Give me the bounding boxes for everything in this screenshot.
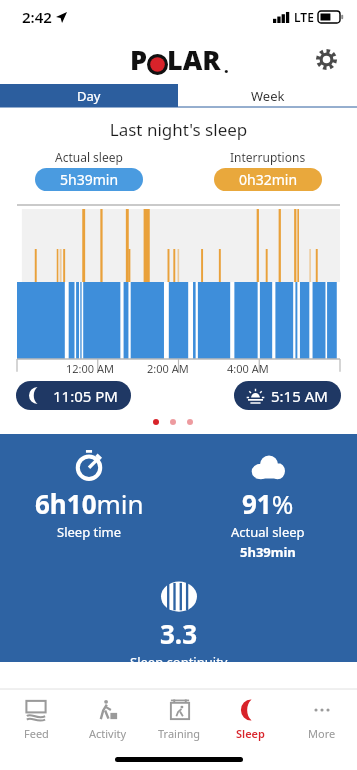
button[interactable]: Day [0, 84, 178, 107]
staticText: Actual sleep [231, 523, 305, 541]
staticText: 12:00 AM [66, 361, 114, 376]
button[interactable]: Week [178, 84, 357, 107]
staticText: Activity [89, 726, 127, 741]
staticText: 6h10min [35, 486, 144, 521]
staticText: Last night's sleep [0, 118, 357, 141]
staticText: . [224, 56, 229, 78]
staticText: 4:00 AM [227, 361, 269, 376]
button[interactable]: Feed [0, 690, 72, 748]
staticText: LTE [294, 9, 314, 25]
staticText: P [130, 41, 148, 78]
staticText: Sleep time [57, 523, 122, 541]
button[interactable]: Settings [309, 42, 343, 76]
staticText: 2:42 [22, 7, 52, 27]
staticText: 11:05 PM [53, 386, 118, 406]
staticText: LAR [167, 41, 221, 78]
staticText: Day [77, 87, 101, 105]
button[interactable]: More [286, 690, 357, 748]
staticText: 2:00 AM [147, 361, 189, 376]
staticText: Feed [24, 726, 49, 741]
staticText: Interruptions [230, 149, 306, 165]
staticText: Actual sleep [55, 149, 123, 165]
button[interactable]: 5:15 AM [234, 381, 341, 410]
staticText: 5h39min [240, 543, 296, 561]
button[interactable]: Activity [72, 690, 144, 748]
staticText: Training [158, 726, 201, 741]
button[interactable]: 11:05 PM [16, 381, 131, 410]
staticText: 5:15 AM [271, 386, 328, 406]
staticText: 0h32min [239, 170, 298, 189]
staticText: Sleep continuity [130, 653, 228, 662]
staticText: 91% [242, 486, 294, 521]
staticText: 3.3 [160, 616, 198, 651]
button[interactable]: Training [144, 690, 215, 748]
staticText: More [308, 726, 336, 741]
button[interactable]: Sleep [215, 690, 286, 748]
staticText: Sleep [236, 726, 265, 741]
button[interactable]: 0h32min [214, 168, 322, 191]
staticText: Week [251, 87, 285, 105]
button[interactable]: 5h39min [35, 168, 143, 191]
staticText: 5h39min [60, 170, 119, 189]
